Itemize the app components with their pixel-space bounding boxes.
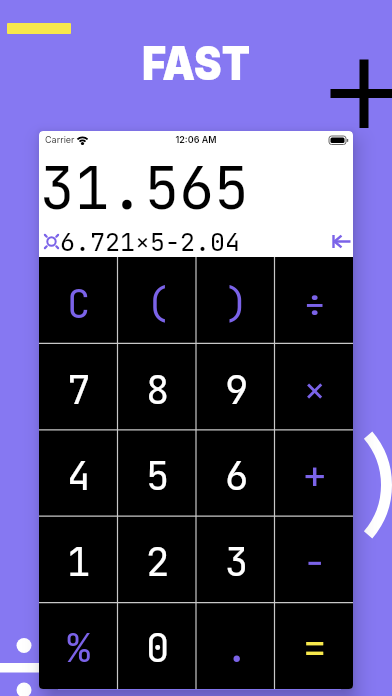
staticText: −: [303, 536, 327, 587]
button[interactable]: [322, 224, 353, 257]
button[interactable]: 9: [197, 343, 276, 429]
staticText: C: [67, 278, 91, 329]
button[interactable]: 1: [39, 515, 118, 601]
staticText: 3: [225, 536, 249, 587]
staticText: 1: [67, 536, 91, 587]
staticText: %: [67, 622, 91, 673]
button[interactable]: −: [276, 515, 353, 601]
button[interactable]: ×: [276, 343, 353, 429]
staticText: ×: [303, 364, 327, 415]
staticText: FAST: [23, 34, 368, 91]
staticText: 31.565: [40, 150, 249, 227]
button[interactable]: ): [197, 257, 276, 343]
staticText: 2: [146, 536, 170, 587]
staticText: Carrier: [45, 134, 75, 145]
button[interactable]: ÷: [276, 257, 353, 343]
button[interactable]: 6: [197, 429, 276, 515]
staticText: 7: [67, 364, 91, 415]
button[interactable]: .: [197, 601, 276, 687]
button[interactable]: 8: [118, 343, 197, 429]
button[interactable]: 4: [39, 429, 118, 515]
staticText: 6: [225, 450, 249, 501]
button[interactable]: 0: [118, 601, 197, 687]
staticText: 8: [146, 364, 170, 415]
staticText: .: [225, 622, 249, 673]
button[interactable]: 2: [118, 515, 197, 601]
button[interactable]: 3: [197, 515, 276, 601]
button[interactable]: =: [276, 601, 353, 687]
staticText: 9: [225, 364, 249, 415]
button[interactable]: 7: [39, 343, 118, 429]
staticText: 4: [67, 450, 91, 501]
staticText: (: [146, 278, 170, 329]
staticText: 5: [146, 450, 170, 501]
staticText: ÷: [303, 278, 327, 329]
staticText: ): [225, 278, 249, 329]
button[interactable]: +: [276, 429, 353, 515]
staticText: 0: [146, 622, 170, 673]
button[interactable]: [39, 224, 67, 257]
button[interactable]: (: [118, 257, 197, 343]
staticText: 6.721×5-2.04: [60, 225, 241, 258]
button[interactable]: C: [39, 257, 118, 343]
staticText: 12:06 AM: [39, 134, 353, 145]
button[interactable]: %: [39, 601, 118, 687]
button[interactable]: 5: [118, 429, 197, 515]
staticText: +: [303, 450, 327, 501]
staticText: =: [303, 622, 327, 673]
